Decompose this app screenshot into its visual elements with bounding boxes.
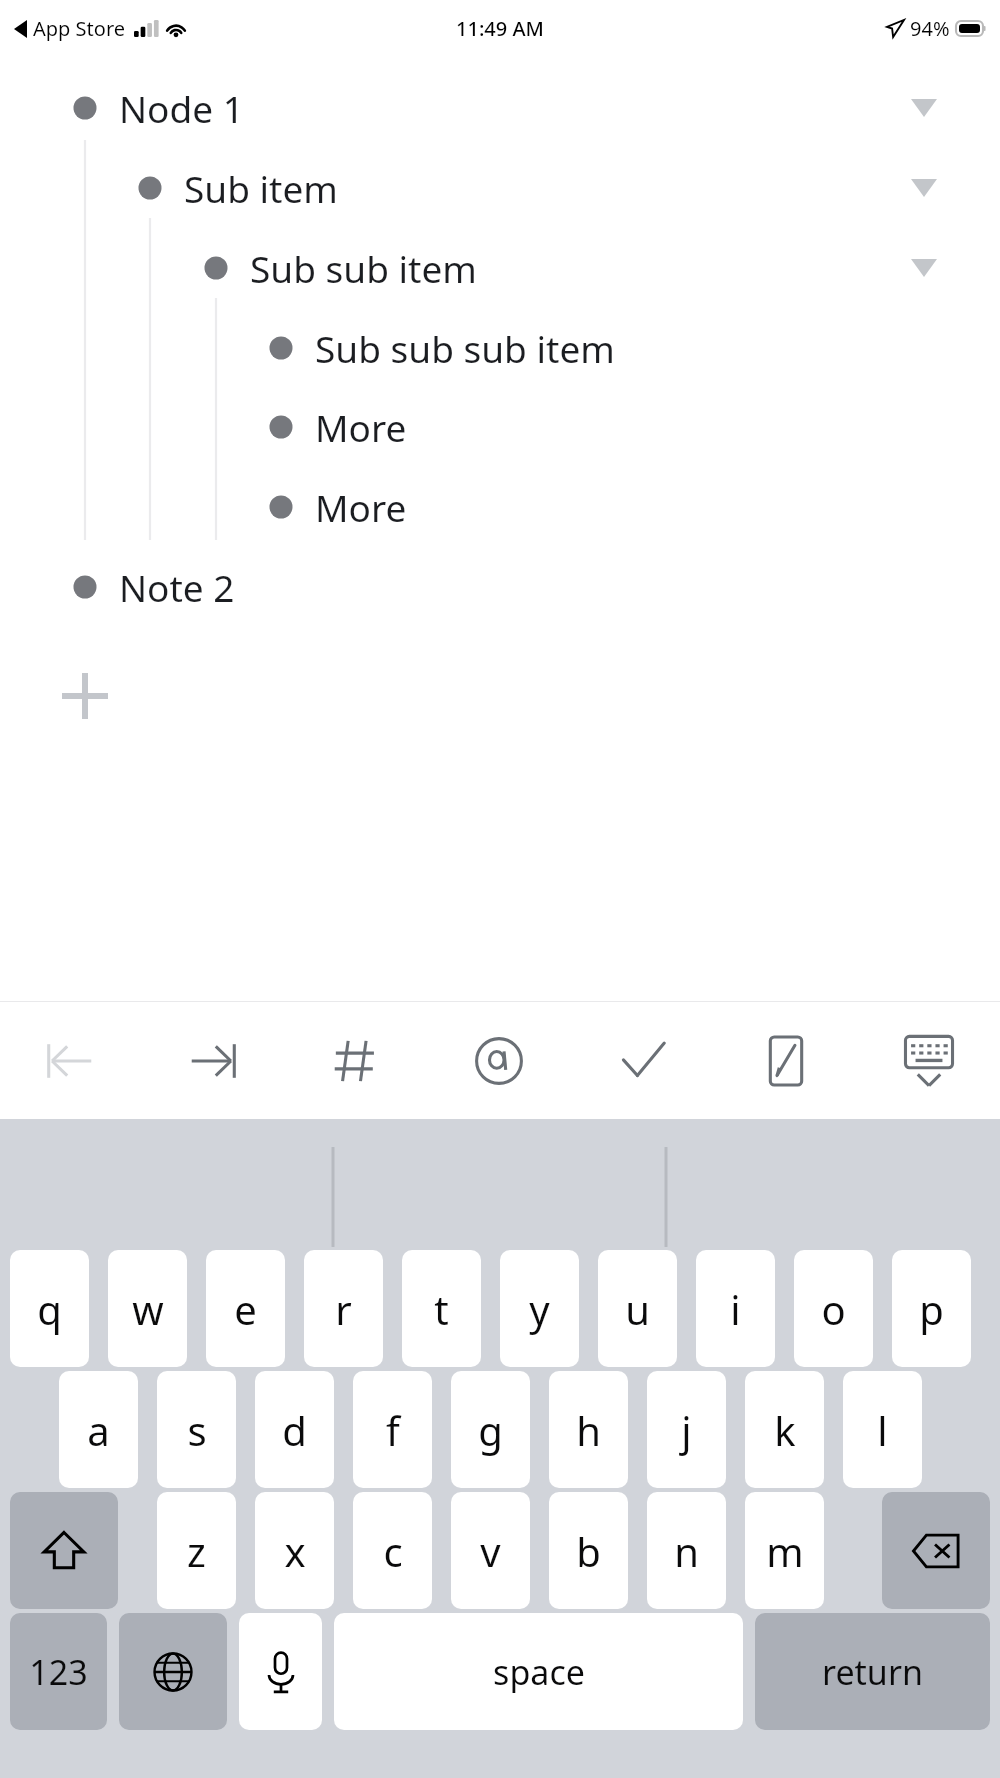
button[interactable]: x: [255, 1492, 334, 1609]
staticText: m: [766, 1524, 804, 1578]
staticText: s: [187, 1403, 207, 1457]
staticText: u: [625, 1282, 650, 1336]
button[interactable]: e: [206, 1250, 285, 1367]
button[interactable]: t: [402, 1250, 481, 1367]
button[interactable]: return: [755, 1613, 990, 1730]
button[interactable]: Note: [728, 1006, 844, 1116]
button[interactable]: Sub sub sub item: [253, 315, 992, 381]
button[interactable]: i: [696, 1250, 775, 1367]
staticText: Sub sub item: [250, 243, 477, 293]
button[interactable]: o: [794, 1250, 873, 1367]
staticText: 11:49 AM: [456, 15, 544, 42]
staticText: c: [383, 1524, 403, 1578]
button[interactable]: Node 1: [57, 75, 992, 141]
button[interactable]: Tag: [298, 1006, 414, 1116]
button[interactable]: d: [255, 1371, 334, 1488]
button[interactable]: p: [892, 1250, 971, 1367]
staticText: 123: [29, 1649, 88, 1695]
button[interactable]: Mention: [441, 1006, 557, 1116]
button[interactable]: Hide keyboard: [871, 1006, 987, 1116]
staticText: Note 2: [119, 562, 235, 612]
staticText: k: [774, 1403, 796, 1457]
staticText: x: [284, 1524, 306, 1578]
button[interactable]: z: [157, 1492, 236, 1609]
button[interactable]: More: [253, 474, 992, 540]
staticText: App Store: [33, 15, 126, 42]
button[interactable]: j: [647, 1371, 726, 1488]
staticText: n: [674, 1524, 699, 1578]
button[interactable]: u: [598, 1250, 677, 1367]
staticText: i: [730, 1282, 741, 1336]
button[interactable]: Collapse Sub sub item: [892, 240, 956, 296]
staticText: g: [478, 1403, 503, 1457]
button[interactable]: r: [304, 1250, 383, 1367]
button[interactable]: Outdent: [12, 1006, 128, 1116]
button[interactable]: v: [451, 1492, 530, 1609]
button[interactable]: Collapse Node 1: [892, 80, 956, 136]
staticText: Sub item: [184, 163, 338, 213]
staticText: p: [919, 1282, 944, 1336]
button[interactable]: Complete: [585, 1006, 701, 1116]
button[interactable]: n: [647, 1492, 726, 1609]
staticText: o: [821, 1282, 846, 1336]
button[interactable]: Sub item: [122, 155, 992, 221]
staticText: y: [529, 1282, 550, 1336]
button[interactable]: Next keyboard: [119, 1613, 227, 1730]
staticText: return: [822, 1649, 923, 1695]
button[interactable]: h: [549, 1371, 628, 1488]
button[interactable]: Add item: [52, 663, 118, 729]
button[interactable]: m: [745, 1492, 824, 1609]
staticText: j: [681, 1403, 692, 1457]
button[interactable]: g: [451, 1371, 530, 1488]
button[interactable]: c: [353, 1492, 432, 1609]
button[interactable]: b: [549, 1492, 628, 1609]
button[interactable]: w: [108, 1250, 187, 1367]
staticText: 94%: [910, 15, 950, 42]
button[interactable]: k: [745, 1371, 824, 1488]
staticText: w: [132, 1282, 164, 1336]
staticText: v: [480, 1524, 501, 1578]
button[interactable]: l: [843, 1371, 922, 1488]
staticText: Node 1: [119, 83, 244, 133]
staticText: Sub sub sub item: [315, 323, 615, 373]
staticText: More: [315, 402, 407, 452]
staticText: q: [37, 1282, 62, 1336]
button[interactable]: s: [157, 1371, 236, 1488]
staticText: e: [234, 1282, 257, 1336]
staticText: f: [386, 1403, 400, 1457]
staticText: z: [187, 1524, 206, 1578]
staticText: More: [315, 482, 407, 532]
staticText: b: [576, 1524, 601, 1578]
staticText: d: [282, 1403, 307, 1457]
staticText: t: [434, 1282, 449, 1336]
button[interactable]: y: [500, 1250, 579, 1367]
button[interactable]: Dictation: [239, 1613, 322, 1730]
button[interactable]: f: [353, 1371, 432, 1488]
button[interactable]: Collapse Sub item: [892, 160, 956, 216]
button[interactable]: Backspace: [882, 1492, 990, 1609]
button[interactable]: 123: [10, 1613, 107, 1730]
staticText: h: [576, 1403, 601, 1457]
button[interactable]: Sub sub item: [188, 235, 992, 301]
staticText: a: [87, 1403, 110, 1457]
button[interactable]: a: [59, 1371, 138, 1488]
staticText: l: [877, 1403, 888, 1457]
staticText: r: [335, 1282, 352, 1336]
button[interactable]: Shift: [10, 1492, 118, 1609]
button[interactable]: More: [253, 394, 992, 460]
button[interactable]: space: [334, 1613, 743, 1730]
button[interactable]: Indent: [155, 1006, 271, 1116]
staticText: space: [493, 1649, 585, 1695]
button[interactable]: Note 2: [57, 554, 992, 620]
button[interactable]: q: [10, 1250, 89, 1367]
